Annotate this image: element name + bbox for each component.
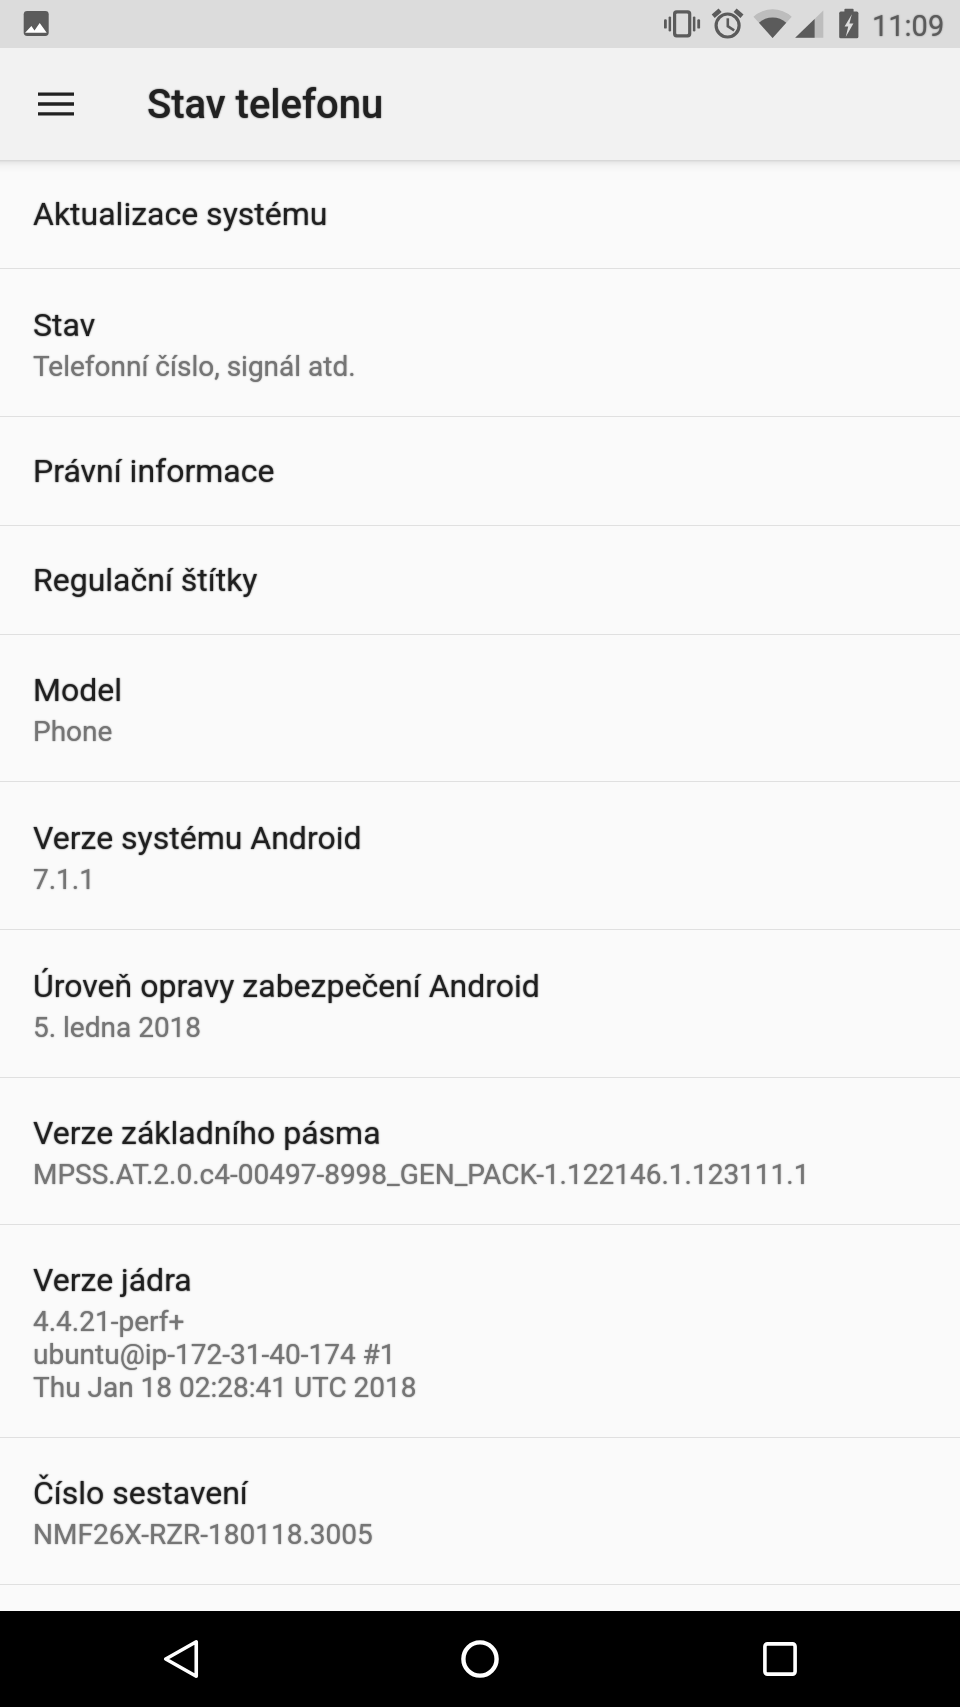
button[interactable]: Back [117, 1611, 245, 1707]
button[interactable]: Open navigation menu [0, 48, 112, 160]
button[interactable]: Číslo sestavení [0, 1438, 960, 1584]
button[interactable]: Stav [0, 269, 960, 416]
button[interactable]: Verze jádra [0, 1225, 960, 1437]
staticText: ubuntu@ip-172-31-40-174 #1 [33, 1338, 396, 1371]
button[interactable]: Home [416, 1611, 544, 1707]
staticText: Phone [33, 715, 113, 748]
staticText: Telefonní číslo, signál atd. [33, 350, 356, 383]
staticText: 7.1.1 [33, 863, 95, 896]
staticText: Verze základního pásma [33, 1114, 381, 1152]
staticText: MPSS.AT.2.0.c4-00497-8998_GEN_PACK-1.122… [33, 1158, 810, 1191]
button[interactable]: Verze základního pásma [0, 1078, 960, 1224]
staticText: Číslo sestavení [33, 1474, 248, 1512]
button[interactable]: Regulační štítky [0, 526, 960, 634]
button[interactable]: Úroveň opravy zabezpečení Android [0, 930, 960, 1077]
button[interactable]: Recent apps [716, 1611, 844, 1707]
staticText: Verze systému Android [33, 819, 362, 857]
staticText: Model [33, 671, 122, 709]
staticText: Úroveň opravy zabezpečení Android [33, 967, 540, 1005]
staticText: Stav [33, 306, 96, 344]
button[interactable]: Právní informace [0, 417, 960, 525]
staticText: Verze jádra [33, 1261, 192, 1299]
button[interactable]: Verze systému Android [0, 782, 960, 929]
staticText: Stav telefonu [147, 81, 384, 128]
staticText: 11:09 [872, 9, 945, 43]
button[interactable]: Model [0, 635, 960, 781]
staticText: Regulační štítky [33, 561, 258, 599]
staticText: Thu Jan 18 02:28:41 UTC 2018 [33, 1371, 417, 1404]
staticText: 5. ledna 2018 [33, 1011, 202, 1044]
staticText: NMF26X-RZR-180118.3005 [33, 1518, 373, 1551]
staticText: Aktualizace systému [33, 195, 328, 233]
staticText: Právní informace [33, 452, 275, 490]
button[interactable]: Aktualizace systému [0, 160, 960, 268]
staticText: 4.4.21-perf+ [33, 1305, 185, 1338]
